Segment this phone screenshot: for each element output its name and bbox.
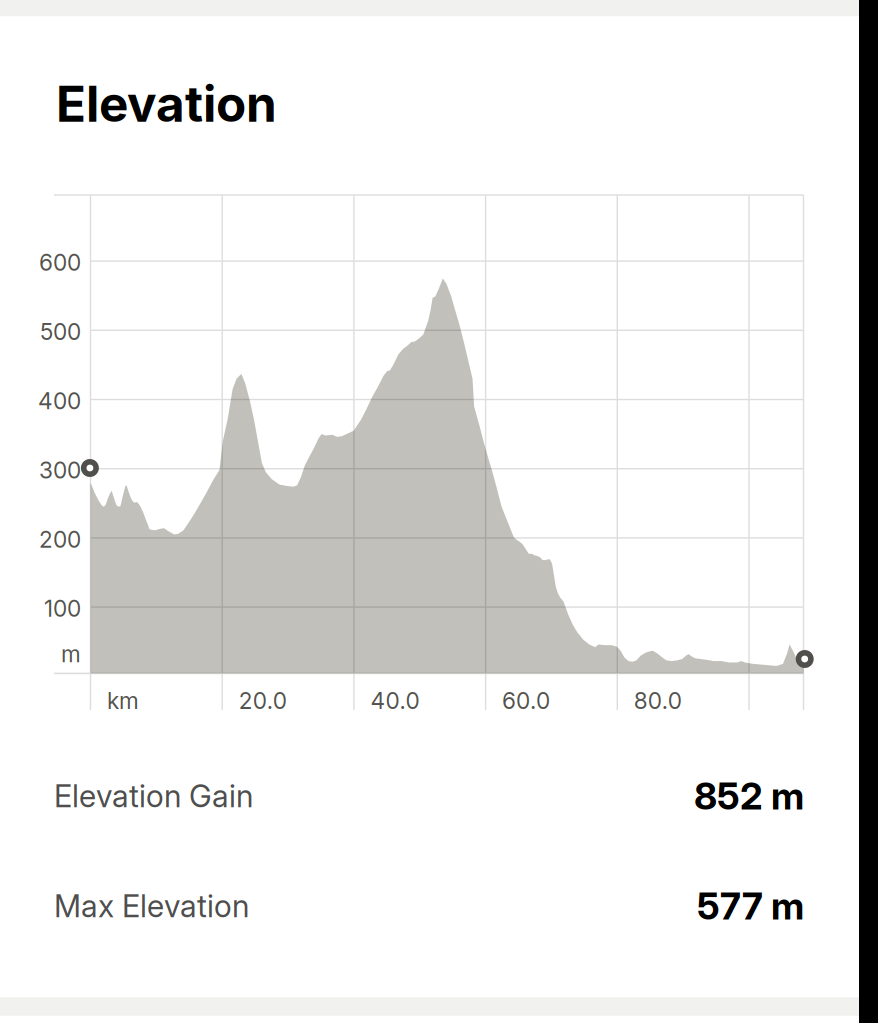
staticText: Elevation Gain: [54, 777, 253, 814]
button[interactable]: Elevation Gain: [54, 774, 804, 818]
staticText: 300: [39, 456, 81, 484]
staticText: 60.0: [502, 687, 550, 714]
staticText: 20.0: [239, 687, 287, 714]
staticText: 200: [39, 526, 81, 553]
staticText: 852 m: [694, 773, 804, 819]
staticText: 100: [44, 595, 81, 622]
staticText: 600: [39, 249, 81, 276]
staticText: 80.0: [634, 687, 682, 714]
staticText: m: [61, 640, 81, 668]
button[interactable]: Max Elevation: [54, 884, 804, 928]
staticText: 500: [40, 318, 81, 345]
staticText: Elevation: [56, 74, 277, 134]
staticText: 400: [38, 387, 81, 415]
staticText: 40.0: [370, 687, 419, 714]
staticText: Max Elevation: [54, 887, 249, 924]
staticText: 577 m: [697, 883, 804, 929]
staticText: km: [107, 687, 139, 714]
